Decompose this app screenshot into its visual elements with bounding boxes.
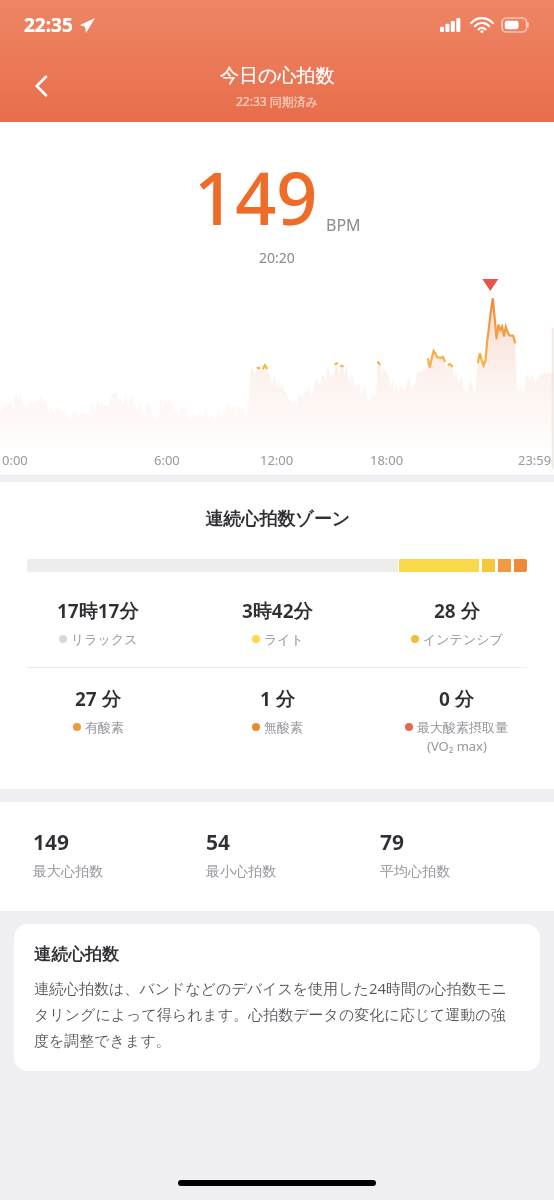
button[interactable]: 17時17分 — [8, 598, 188, 647]
staticText: 28 分 — [434, 598, 480, 624]
staticText: 3時42分 — [242, 598, 313, 624]
button[interactable]: 79 — [380, 828, 554, 881]
staticText: 最大心拍数 — [33, 863, 103, 881]
staticText: 0 分 — [439, 686, 474, 712]
staticText: リラックス — [71, 631, 138, 647]
staticText: 23:59 — [518, 451, 552, 469]
staticText: 17時17分 — [57, 598, 139, 624]
staticText: 27 分 — [75, 686, 121, 712]
button[interactable]: 0 分 — [367, 686, 546, 755]
button[interactable]: 28 分 — [367, 598, 546, 647]
button[interactable]: 27 分 — [8, 686, 188, 735]
staticText: BPM — [326, 214, 361, 236]
staticText: 最小心拍数 — [206, 863, 276, 881]
staticText: 6:00 — [154, 451, 180, 469]
staticText: 平均心拍数 — [380, 863, 450, 881]
staticText: 12:00 — [260, 451, 294, 469]
staticText: 連続心拍数 — [34, 944, 119, 965]
button[interactable]: Back — [16, 60, 68, 112]
staticText: (VO₂ max) — [427, 737, 487, 755]
staticText: 18:00 — [370, 451, 404, 469]
staticText: 1 分 — [260, 686, 295, 712]
staticText: 最大酸素摂取量 — [417, 719, 508, 735]
staticText: 79 — [380, 828, 405, 857]
staticText: 今日の心拍数 — [220, 64, 335, 88]
staticText: 149 — [33, 828, 70, 857]
button[interactable]: 54 — [206, 828, 380, 881]
button[interactable]: 1 分 — [188, 686, 367, 735]
button[interactable]: 149 — [33, 828, 206, 881]
staticText: 0:00 — [2, 451, 28, 469]
staticText: 無酸素 — [264, 719, 303, 735]
staticText: 連続心拍数ゾーン — [205, 508, 350, 531]
staticText: ライト — [264, 631, 304, 647]
staticText: 連続心拍数は、バンドなどのデバイスを使用した24時間の心拍数モニタリングによって… — [34, 978, 520, 1051]
staticText: 有酸素 — [85, 719, 124, 735]
staticText: インテンシブ — [423, 631, 503, 647]
staticText: 20:20 — [259, 248, 295, 267]
staticText: 22:35 — [24, 12, 73, 38]
button[interactable]: 3時42分 — [188, 598, 367, 647]
staticText: 149 — [194, 148, 318, 246]
staticText: 54 — [206, 828, 231, 857]
staticText: 22:33 同期済み — [236, 93, 319, 109]
